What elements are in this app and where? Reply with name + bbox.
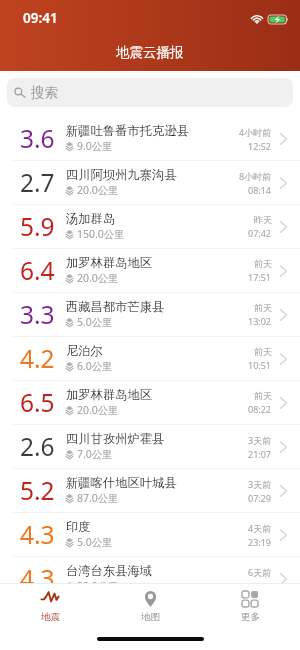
- button[interactable]: 5.9: [0, 205, 300, 249]
- staticText: 前天: [254, 258, 272, 269]
- staticText: 17:51: [248, 271, 272, 283]
- staticText: 4.3: [20, 518, 55, 551]
- staticText: 10:51: [248, 359, 272, 371]
- staticText: 150.0公里: [77, 227, 125, 241]
- staticText: 更多: [241, 611, 260, 623]
- staticText: 西藏昌都市芒康县: [66, 299, 165, 314]
- button[interactable]: 5.2: [0, 469, 300, 513]
- staticText: 印度: [66, 519, 91, 534]
- staticText: 87.0公里: [77, 491, 119, 505]
- staticText: 6.4: [20, 254, 55, 287]
- staticText: 汤加群岛: [66, 211, 116, 226]
- staticText: 5.0公里: [77, 315, 113, 329]
- staticText: 12:52: [248, 140, 272, 152]
- staticText: 7.0公里: [77, 447, 113, 461]
- staticText: 加罗林群岛地区: [66, 255, 153, 270]
- staticText: 5.9: [20, 210, 55, 243]
- staticText: 20.0公里: [77, 271, 119, 285]
- staticText: 2.6: [20, 430, 55, 463]
- staticText: 8小时前: [239, 170, 272, 182]
- staticText: 台湾台东县海域: [66, 563, 153, 578]
- button[interactable]: 搜索: [7, 78, 293, 107]
- staticText: 3天前: [248, 434, 272, 446]
- staticText: 09:41: [23, 9, 58, 27]
- staticText: 2.7: [20, 166, 55, 199]
- staticText: 4天前: [248, 522, 272, 534]
- button[interactable]: 6.4: [0, 249, 300, 293]
- button[interactable]: 6.5: [0, 381, 300, 425]
- button[interactable]: 3.3: [0, 293, 300, 337]
- staticText: 20.0公里: [77, 579, 119, 583]
- staticText: 前天: [254, 390, 272, 401]
- button[interactable]: 2.7: [0, 161, 300, 205]
- staticText: 前天: [254, 346, 272, 357]
- button[interactable]: 4.3: [0, 557, 300, 583]
- staticText: 前天: [254, 302, 272, 313]
- button[interactable]: 4.2: [0, 337, 300, 381]
- staticText: 四川阿坝州九寨沟县: [66, 167, 177, 182]
- staticText: 07:42: [248, 227, 272, 239]
- staticText: 13:02: [248, 315, 272, 327]
- button[interactable]: More: [200, 584, 300, 624]
- staticText: 尼泊尔: [66, 343, 103, 358]
- staticText: 5.2: [20, 474, 55, 507]
- staticText: 3.6: [20, 122, 55, 155]
- staticText: 地图: [141, 611, 160, 623]
- staticText: 4.3: [20, 562, 55, 583]
- staticText: 4小时前: [239, 126, 272, 138]
- staticText: 07:29: [248, 492, 272, 504]
- staticText: 地震: [41, 611, 60, 623]
- button[interactable]: 4.3: [0, 513, 300, 557]
- staticText: 23:19: [248, 536, 272, 548]
- staticText: 6.5: [20, 386, 55, 419]
- staticText: 21:07: [248, 448, 272, 460]
- staticText: 3.3: [20, 298, 55, 331]
- staticText: 搜索: [31, 84, 58, 101]
- staticText: 昨天: [254, 214, 272, 225]
- staticText: 9.0公里: [77, 139, 113, 153]
- staticText: 5.0公里: [77, 535, 113, 549]
- staticText: 加罗林群岛地区: [66, 387, 153, 402]
- staticText: 6天前: [248, 566, 272, 578]
- staticText: 地震云播报: [116, 44, 184, 61]
- staticText: 4.2: [20, 342, 55, 375]
- button[interactable]: 3.6: [0, 117, 300, 161]
- button[interactable]: Earthquakes: [0, 584, 100, 624]
- staticText: 新疆吐鲁番市托克逊县: [66, 123, 189, 138]
- staticText: 08:14: [248, 184, 272, 196]
- staticText: 3天前: [248, 478, 272, 490]
- staticText: 08:22: [248, 403, 272, 415]
- staticText: 四川甘孜州炉霍县: [66, 431, 165, 446]
- staticText: 6.0公里: [77, 359, 113, 373]
- staticText: 20.0公里: [77, 403, 119, 417]
- button[interactable]: Map: [100, 584, 200, 624]
- staticText: 20.0公里: [77, 183, 119, 197]
- staticText: 新疆喀什地区叶城县: [66, 475, 177, 490]
- button[interactable]: 2.6: [0, 425, 300, 469]
